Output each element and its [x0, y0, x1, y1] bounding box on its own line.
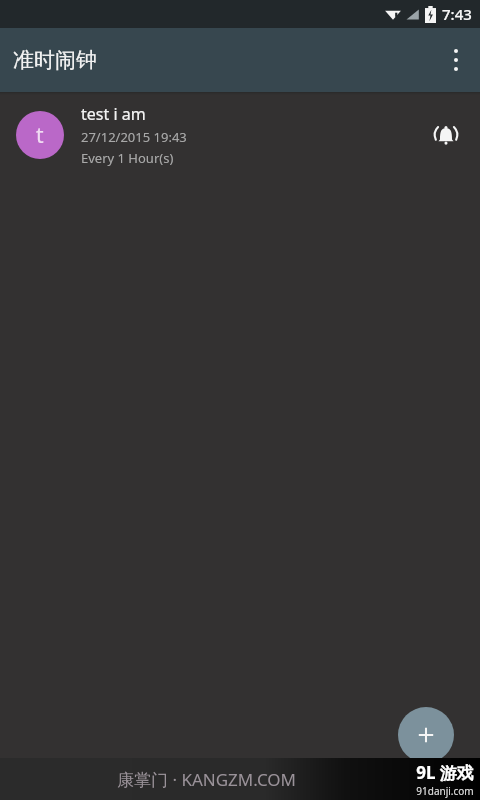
staticText: Every 1 Hour(s): [81, 149, 174, 167]
button[interactable]: t: [0, 95, 480, 175]
staticText: 准时闹钟: [13, 47, 97, 73]
staticText: 27/12/2015 19:43: [81, 128, 187, 146]
staticText: 康掌门 · KANGZM.COM: [117, 768, 297, 791]
button[interactable]: Add alarm: [398, 707, 454, 763]
button[interactable]: Toggle alarm: [422, 111, 470, 159]
button[interactable]: More options: [432, 28, 480, 92]
staticText: test i am: [81, 103, 146, 125]
staticText: t: [36, 121, 44, 150]
staticText: 7:43: [442, 4, 472, 24]
staticText: 9L 游戏: [416, 761, 474, 784]
staticText: 91danji.com: [416, 784, 474, 798]
